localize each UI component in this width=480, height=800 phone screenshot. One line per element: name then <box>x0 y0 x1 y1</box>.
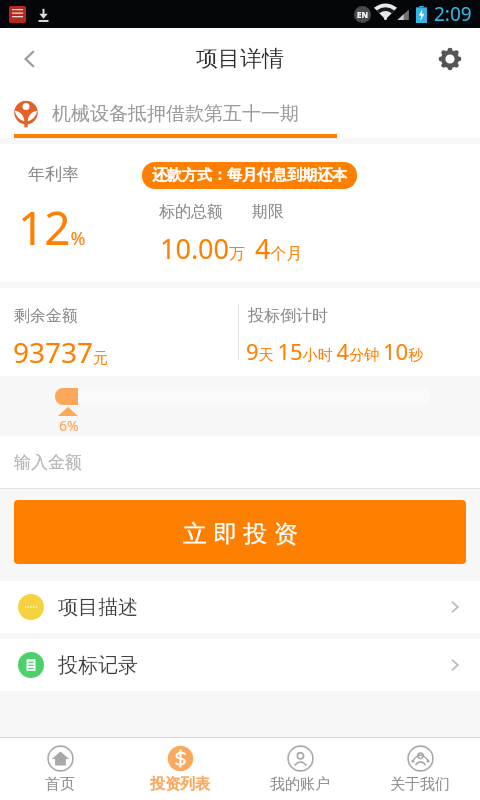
staticText: 投标记录 <box>58 653 138 678</box>
button[interactable]: 立 即 投 资 <box>14 500 466 564</box>
staticText: 项目详情 <box>196 45 284 73</box>
staticText: 立 即 投 资 <box>183 516 298 549</box>
button[interactable]: 设置 <box>420 28 480 90</box>
staticText: 项目描述 <box>58 595 138 620</box>
button[interactable]: 项目描述 <box>0 581 480 633</box>
staticText: 我的账户 <box>270 775 330 794</box>
staticText: 12% <box>18 196 86 259</box>
button[interactable]: 投标记录 <box>0 639 480 691</box>
button[interactable]: 关于我们 <box>360 738 480 800</box>
staticText: 期限 <box>252 202 284 222</box>
staticText: 机械设备抵押借款第五十一期 <box>52 102 299 126</box>
button[interactable]: 首页 <box>0 738 120 800</box>
staticText: 还款方式：每月付息到期还本 <box>152 166 347 185</box>
staticText: 标的总额 <box>159 202 223 222</box>
staticText: 10.00万 <box>160 230 246 267</box>
staticText: 输入金额 <box>14 452 82 473</box>
staticText: 首页 <box>45 775 75 794</box>
button[interactable]: 投资列表 <box>120 738 240 800</box>
button[interactable]: 我的账户 <box>240 738 360 800</box>
staticText: 剩余金额 <box>14 306 78 326</box>
staticText: 关于我们 <box>390 775 450 794</box>
staticText: 年利率 <box>28 164 79 185</box>
staticText: 6% <box>59 416 79 435</box>
staticText: 2:09 <box>434 1 472 27</box>
staticText: 投标倒计时 <box>248 306 328 326</box>
staticText: 9天 15小时 4分钟 10秒 <box>246 336 424 366</box>
staticText: EN <box>357 9 368 20</box>
staticText: 投资列表 <box>150 775 210 794</box>
staticText: 93737元 <box>13 333 109 371</box>
button[interactable]: 输入金额 <box>0 436 480 488</box>
staticText: 4个月 <box>255 230 303 267</box>
button[interactable]: 返回 <box>0 28 60 90</box>
